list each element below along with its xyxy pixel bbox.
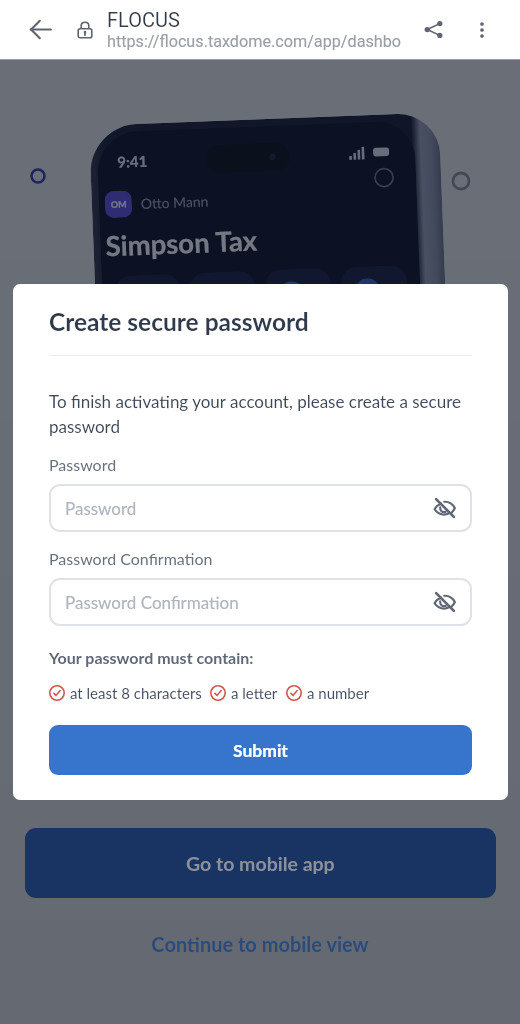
button[interactable]: Site information bbox=[70, 0, 99, 59]
staticText: Submit bbox=[233, 740, 288, 761]
staticText: Otto Mann bbox=[141, 192, 209, 212]
staticText: Go to mobile app bbox=[186, 852, 335, 875]
staticText: Your password must contain: bbox=[49, 648, 254, 667]
staticText: Password Confirmation bbox=[65, 592, 239, 612]
staticText: Password bbox=[65, 498, 137, 518]
button[interactable]: Show password bbox=[431, 588, 459, 616]
button[interactable]: Password Confirmation bbox=[49, 578, 472, 626]
staticText: a number bbox=[307, 684, 370, 702]
button[interactable]: Back bbox=[10, 0, 70, 59]
staticText: OM bbox=[111, 198, 127, 210]
staticText: a letter bbox=[231, 684, 278, 702]
staticText: Create secure password bbox=[49, 307, 309, 336]
button[interactable]: Share bbox=[414, 0, 452, 59]
staticText: Continue to mobile view bbox=[151, 932, 369, 956]
staticText: Password bbox=[49, 455, 117, 474]
staticText: Simpson Tax bbox=[105, 223, 258, 262]
staticText: Password Confirmation bbox=[49, 549, 213, 568]
button[interactable]: Password bbox=[49, 484, 472, 532]
button[interactable]: More options bbox=[464, 0, 500, 59]
staticText: To finish activating your account, pleas… bbox=[49, 391, 472, 437]
staticText: https://flocus.taxdome.com/app/dashbo bbox=[107, 32, 402, 51]
button[interactable]: Show password bbox=[431, 494, 459, 522]
staticText: FLOCUS bbox=[107, 8, 180, 31]
button[interactable]: Submit bbox=[49, 725, 472, 775]
staticText: at least 8 characters bbox=[70, 684, 202, 702]
button[interactable]: Continue to mobile view bbox=[0, 925, 520, 963]
button[interactable]: Go to mobile app bbox=[25, 828, 496, 898]
staticText: 9:41 bbox=[117, 152, 148, 171]
